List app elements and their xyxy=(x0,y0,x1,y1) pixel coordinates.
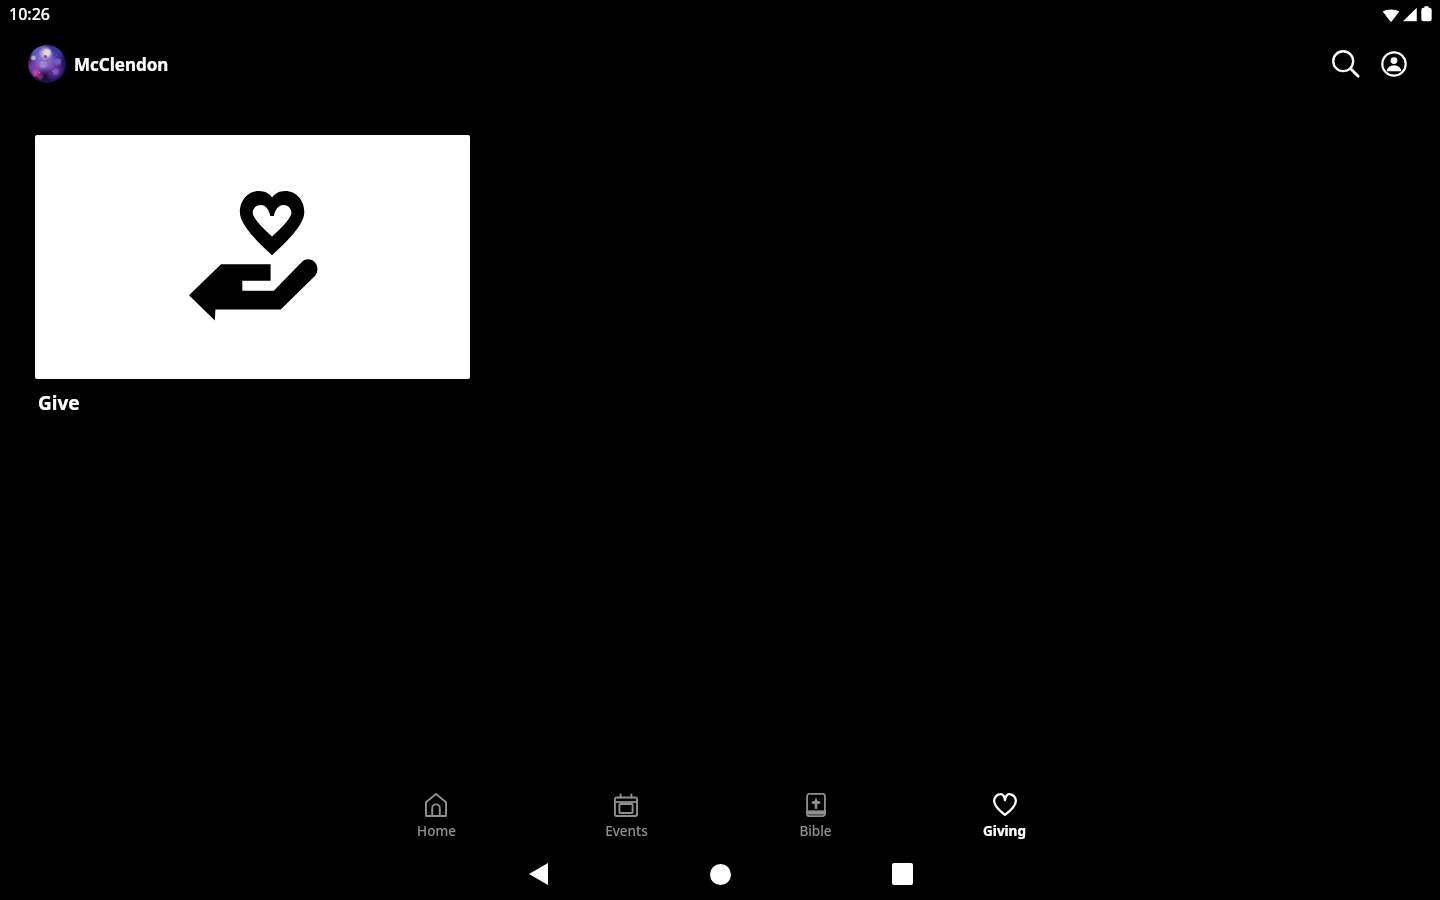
button[interactable]: Home xyxy=(629,848,811,900)
staticText: Give xyxy=(38,390,80,416)
button[interactable]: Events xyxy=(531,774,721,848)
button[interactable] xyxy=(35,135,470,379)
staticText: Home xyxy=(417,822,456,840)
staticText: Bible xyxy=(799,822,832,840)
staticText: Events xyxy=(605,822,648,840)
staticText: McClendon xyxy=(74,53,169,76)
staticText: Giving xyxy=(983,822,1026,840)
button[interactable]: Giving xyxy=(910,774,1099,848)
button[interactable]: Search xyxy=(1322,40,1370,88)
button[interactable]: Recents xyxy=(811,848,993,900)
staticText: 10:26 xyxy=(9,3,50,25)
button[interactable]: Home xyxy=(341,774,531,848)
button[interactable]: Account xyxy=(1370,40,1418,88)
button[interactable]: Bible xyxy=(721,774,910,848)
button[interactable]: Back xyxy=(447,848,629,900)
